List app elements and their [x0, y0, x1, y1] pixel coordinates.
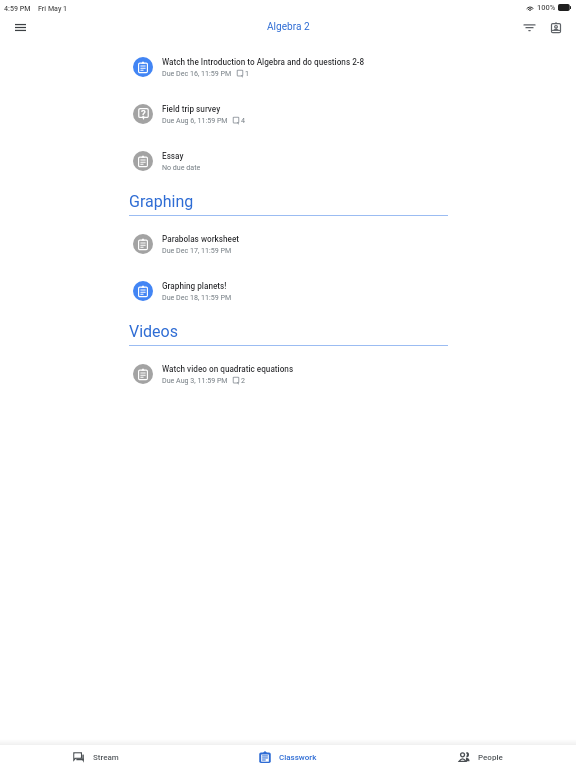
- button[interactable]: People: [384, 745, 576, 768]
- staticText: 100%: [537, 3, 556, 12]
- button[interactable]: Watch the Introduction to Algebra and do…: [0, 43, 576, 90]
- staticText: Essay: [162, 151, 184, 161]
- staticText: Watch video on quadratic equations: [162, 364, 294, 374]
- staticText: Parabolas worksheet: [162, 234, 240, 244]
- button[interactable]: Stream: [0, 745, 192, 768]
- staticText: Due Dec 16, 11:59 PM: [162, 69, 232, 77]
- staticText: Due Aug 3, 11:59 PM: [162, 376, 228, 384]
- staticText: Due Aug 6, 11:59 PM: [162, 116, 228, 124]
- button[interactable]: Your work: [544, 15, 568, 39]
- staticText: 1: [245, 69, 249, 77]
- button[interactable]: Classwork: [192, 745, 384, 768]
- button[interactable]: Watch video on quadratic equations: [0, 350, 576, 397]
- staticText: Classwork: [279, 753, 317, 762]
- staticText: ?: [141, 108, 146, 119]
- staticText: Algebra 2: [267, 21, 310, 33]
- staticText: Field trip survey: [162, 104, 221, 114]
- staticText: Fri May 1: [38, 4, 68, 12]
- staticText: Due Dec 17, 11:59 PM: [162, 246, 232, 254]
- staticText: Watch the Introduction to Algebra and do…: [162, 57, 365, 67]
- staticText: 4: [241, 116, 245, 124]
- staticText: People: [478, 753, 503, 762]
- button[interactable]: Essay: [0, 137, 576, 184]
- staticText: Due Dec 18, 11:59 PM: [162, 293, 232, 301]
- button[interactable]: Filter: [517, 15, 541, 39]
- staticText: 4:59 PM: [4, 4, 31, 12]
- button[interactable]: Graphing planets!: [0, 267, 576, 314]
- staticText: 2: [241, 376, 245, 384]
- button[interactable]: Parabolas worksheet: [0, 220, 576, 267]
- staticText: No due date: [162, 163, 201, 171]
- staticText: Graphing: [129, 192, 194, 211]
- staticText: Videos: [129, 322, 178, 341]
- button[interactable]: Menu: [8, 15, 32, 39]
- staticText: Graphing planets!: [162, 281, 227, 291]
- button[interactable]: ?: [0, 90, 576, 137]
- staticText: Stream: [93, 753, 119, 762]
